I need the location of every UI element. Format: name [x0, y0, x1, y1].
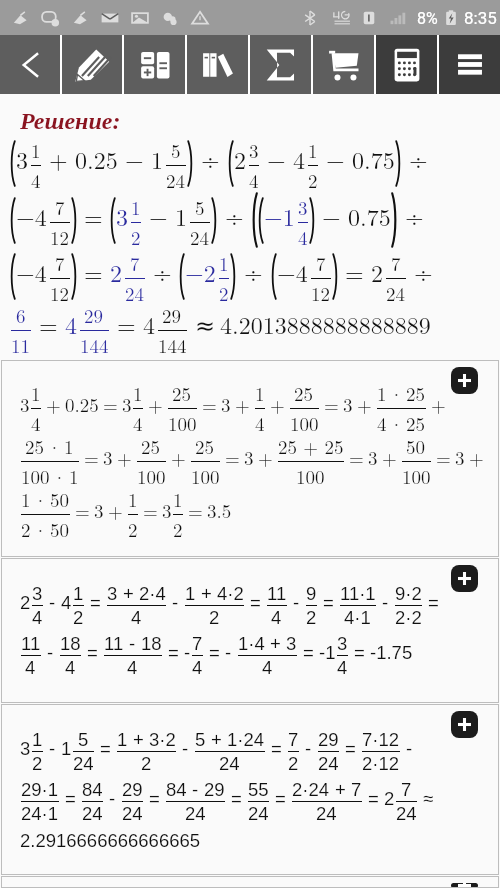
- staticText: 3: [337, 633, 348, 654]
- staticText: =: [231, 788, 242, 809]
- staticText: 24: [122, 803, 143, 824]
- staticText: 18: [141, 633, 162, 654]
- staticText: 12: [50, 224, 70, 251]
- staticText: 2: [131, 224, 141, 251]
- staticText: 2: [20, 592, 31, 613]
- staticText: 100: [296, 463, 325, 490]
- staticText: =: [345, 255, 364, 289]
- staticText: 25: [195, 433, 215, 460]
- button[interactable]: Sum: [250, 35, 311, 94]
- staticText: 3: [116, 199, 128, 233]
- staticText: =: [168, 642, 179, 663]
- staticText: +: [211, 729, 222, 750]
- staticText: +: [270, 633, 281, 654]
- staticText: 1: [173, 486, 183, 513]
- staticText: 6: [16, 302, 26, 329]
- staticText: 144: [80, 332, 109, 359]
- button[interactable]: Draw: [62, 35, 122, 94]
- button[interactable]: Calculator keys: [124, 35, 185, 94]
- staticText: +: [117, 444, 132, 471]
- staticText: 2·24: [292, 779, 330, 800]
- staticText: -: [382, 592, 389, 613]
- staticText: 1: [31, 380, 41, 407]
- staticText: +: [133, 729, 144, 750]
- staticText: 24: [190, 224, 210, 251]
- staticText: 18: [60, 633, 81, 654]
- staticText: 4: [131, 607, 142, 628]
- staticText: 1: [32, 729, 43, 750]
- staticText: -: [49, 592, 56, 613]
- staticText: 25: [294, 380, 314, 407]
- staticText: 9·2: [395, 583, 422, 604]
- staticText: 4: [65, 657, 76, 678]
- button[interactable]: Expand step: [451, 883, 478, 888]
- staticText: 7: [351, 779, 362, 800]
- staticText: 2: [73, 607, 84, 628]
- button[interactable]: Cart: [313, 35, 374, 94]
- staticText: =: [303, 642, 314, 663]
- staticText: 1: [61, 738, 72, 759]
- staticText: 3: [32, 583, 43, 604]
- staticText: +: [270, 391, 285, 418]
- staticText: 4: [127, 657, 138, 678]
- staticText: 24: [248, 803, 269, 824]
- button[interactable]: Expand step: [451, 565, 478, 592]
- staticText: 4: [61, 592, 72, 613]
- staticText: +: [123, 583, 134, 604]
- staticText: +: [258, 444, 273, 471]
- staticText: +: [148, 391, 163, 418]
- staticText: 29: [204, 779, 225, 800]
- staticText: =: [428, 592, 439, 613]
- button[interactable]: Expand step: [451, 367, 478, 394]
- staticText: 11: [267, 583, 287, 604]
- staticText: ≈: [195, 312, 216, 340]
- staticText: −1: [264, 199, 295, 233]
- staticText: =: [84, 255, 103, 289]
- staticText: −: [149, 199, 168, 233]
- staticText: +: [431, 391, 446, 418]
- staticText: =: [87, 642, 98, 663]
- button[interactable]: Library: [187, 35, 248, 94]
- staticText: 7: [130, 250, 140, 277]
- staticText: 25: [406, 410, 426, 437]
- staticText: 1: [73, 583, 84, 604]
- staticText: 4: [271, 607, 282, 628]
- staticText: ÷: [414, 255, 433, 289]
- staticText: 2: [219, 280, 229, 307]
- staticText: 7: [55, 250, 65, 277]
- staticText: 4: [192, 657, 203, 678]
- staticText: =: [100, 738, 111, 759]
- staticText: 1: [175, 199, 187, 233]
- staticText: 2: [209, 607, 220, 628]
- staticText: 3.5: [207, 497, 232, 524]
- button[interactable]: Expand step: [451, 711, 478, 738]
- staticText: 7: [192, 633, 203, 654]
- staticText: 11: [104, 633, 124, 654]
- staticText: 7: [288, 729, 299, 750]
- staticText: =: [250, 592, 261, 613]
- staticText: -: [172, 592, 179, 613]
- staticText: +: [49, 142, 68, 176]
- staticText: =: [368, 788, 379, 809]
- staticText: 2·4: [139, 583, 166, 604]
- staticText: 2: [21, 516, 31, 543]
- staticText: +: [201, 583, 212, 604]
- button[interactable]: Calculator: [376, 35, 437, 94]
- button[interactable]: Back: [0, 35, 60, 94]
- staticText: 4: [249, 167, 259, 194]
- staticText: −4: [16, 255, 47, 289]
- staticText: 0.25: [65, 391, 99, 418]
- staticText: +: [235, 391, 250, 418]
- staticText: +: [382, 444, 397, 471]
- staticText: ·: [389, 410, 404, 437]
- staticText: 8%: [417, 9, 438, 28]
- staticText: 29: [122, 779, 143, 800]
- button[interactable]: Menu: [439, 35, 500, 94]
- staticText: 24: [219, 753, 240, 774]
- staticText: 3: [298, 194, 308, 221]
- staticText: 4: [31, 167, 41, 194]
- staticText: 2: [306, 607, 317, 628]
- staticText: 2: [384, 788, 395, 809]
- staticText: 3: [244, 444, 254, 471]
- staticText: =: [275, 788, 286, 809]
